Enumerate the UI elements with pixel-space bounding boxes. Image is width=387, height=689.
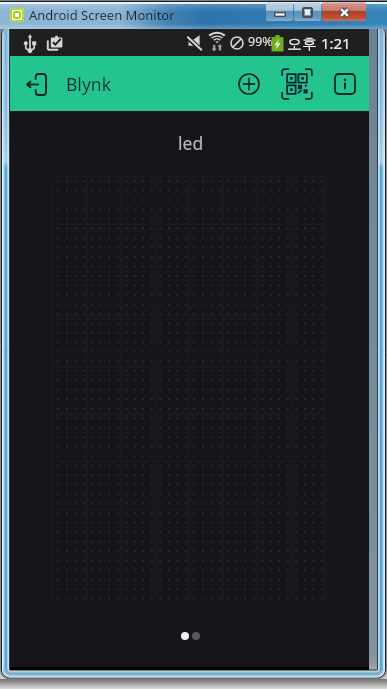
staticText: Android Screen Monitor bbox=[29, 6, 175, 24]
button[interactable]: Add bbox=[229, 64, 269, 104]
staticText: Blynk bbox=[66, 72, 111, 96]
button[interactable]: Minimize bbox=[266, 2, 293, 21]
button[interactable]: Close bbox=[322, 2, 366, 21]
staticText: 오후 1:21 bbox=[287, 33, 351, 53]
button[interactable]: Scan QR code bbox=[277, 64, 317, 104]
button[interactable]: Info bbox=[325, 64, 365, 104]
staticText: led bbox=[178, 131, 204, 155]
staticText: 99% bbox=[248, 33, 273, 50]
button[interactable]: Log out bbox=[16, 64, 56, 104]
button[interactable]: Maximize bbox=[294, 2, 321, 21]
